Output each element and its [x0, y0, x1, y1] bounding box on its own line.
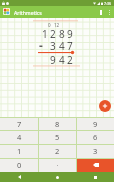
button[interactable]: 0 [0, 158, 38, 172]
button[interactable]: Recents [76, 172, 114, 182]
staticText: 3 [50, 39, 56, 53]
button[interactable]: 6 [77, 130, 114, 144]
staticText: 7 [17, 119, 22, 129]
staticText: 4 [59, 39, 65, 53]
staticText: 8 [59, 27, 65, 41]
staticText: 9 [67, 27, 73, 41]
staticText: 2 [50, 27, 56, 41]
staticText: 7 [67, 39, 73, 53]
button[interactable]: More options [105, 6, 113, 18]
staticText: 4 [17, 132, 22, 142]
staticText: 4 [59, 53, 65, 67]
staticText: 2 [67, 53, 73, 67]
button[interactable]: 5 [39, 130, 76, 144]
button[interactable]: Home [38, 172, 76, 182]
staticText: 0 [17, 160, 22, 170]
button[interactable]: 2 [39, 144, 76, 158]
button[interactable]: 4 [0, 130, 38, 144]
staticText: 6 [93, 132, 98, 142]
button[interactable] [39, 158, 76, 172]
staticText: 9 [93, 119, 98, 129]
staticText: 2 [55, 146, 60, 156]
button[interactable]: Back [0, 172, 38, 182]
button[interactable]: 3 [77, 144, 114, 158]
staticText: 9 [50, 53, 56, 67]
button[interactable]: 1 [0, 144, 38, 158]
staticText: 8 [55, 119, 60, 129]
staticText: 1 [17, 146, 22, 156]
button[interactable]: Add [99, 100, 111, 112]
staticText: 1 [42, 27, 48, 41]
staticText: 12 [54, 22, 60, 28]
button[interactable]: 7 [0, 117, 38, 130]
button[interactable]: App icon [3, 8, 10, 15]
staticText: 5 [55, 132, 60, 142]
button[interactable]: 8 [39, 117, 76, 130]
staticText: Arithmetics [14, 9, 42, 16]
staticText: 0 [48, 22, 51, 28]
staticText: 7:36 [104, 1, 112, 6]
button[interactable]: Notes [96, 6, 106, 18]
button[interactable]: Backspace [77, 158, 114, 172]
button[interactable]: 9 [77, 117, 114, 130]
staticText: 3 [93, 146, 98, 156]
